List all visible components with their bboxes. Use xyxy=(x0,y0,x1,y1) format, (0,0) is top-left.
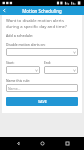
button[interactable]: Select xyxy=(44,66,78,74)
button[interactable]: Name... xyxy=(6,84,78,92)
staticText: SAVE xyxy=(38,99,47,104)
staticText: Add a schedule: xyxy=(6,33,34,38)
staticText: End: xyxy=(44,60,51,64)
button[interactable]: Home xyxy=(35,137,49,150)
button[interactable]: Select xyxy=(6,66,40,74)
staticText: Want to disable motion alerts during a s… xyxy=(6,18,78,30)
staticText: Name... xyxy=(8,86,21,91)
staticText: Motion Scheduling xyxy=(22,8,62,14)
button[interactable]: Back xyxy=(0,6,9,15)
button[interactable]: Recent apps xyxy=(60,137,74,150)
staticText: Disable motion alerts on: xyxy=(6,42,46,46)
button[interactable]: SAVE xyxy=(6,97,78,106)
staticText: Start: xyxy=(6,60,15,64)
staticText: Name this rule: xyxy=(6,78,31,82)
button[interactable]: Select xyxy=(6,48,78,56)
button[interactable]: Back xyxy=(11,137,25,150)
